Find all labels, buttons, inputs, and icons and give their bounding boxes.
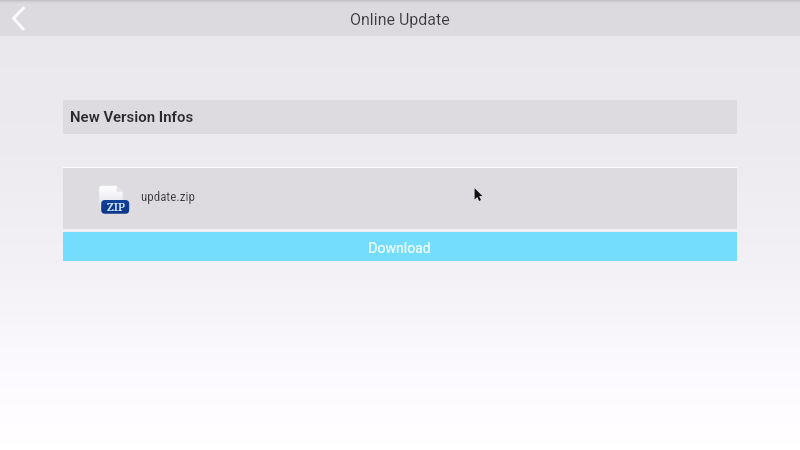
staticText: Online Update — [350, 10, 450, 29]
button[interactable]: Back — [0, 0, 38, 36]
button[interactable]: Download — [63, 232, 737, 261]
staticText: update.zip — [141, 189, 195, 204]
staticText: New Version Infos — [70, 108, 194, 126]
button[interactable]: ZIP — [63, 168, 737, 229]
staticText: Download — [368, 240, 431, 256]
staticText: ZIP — [107, 199, 125, 215]
